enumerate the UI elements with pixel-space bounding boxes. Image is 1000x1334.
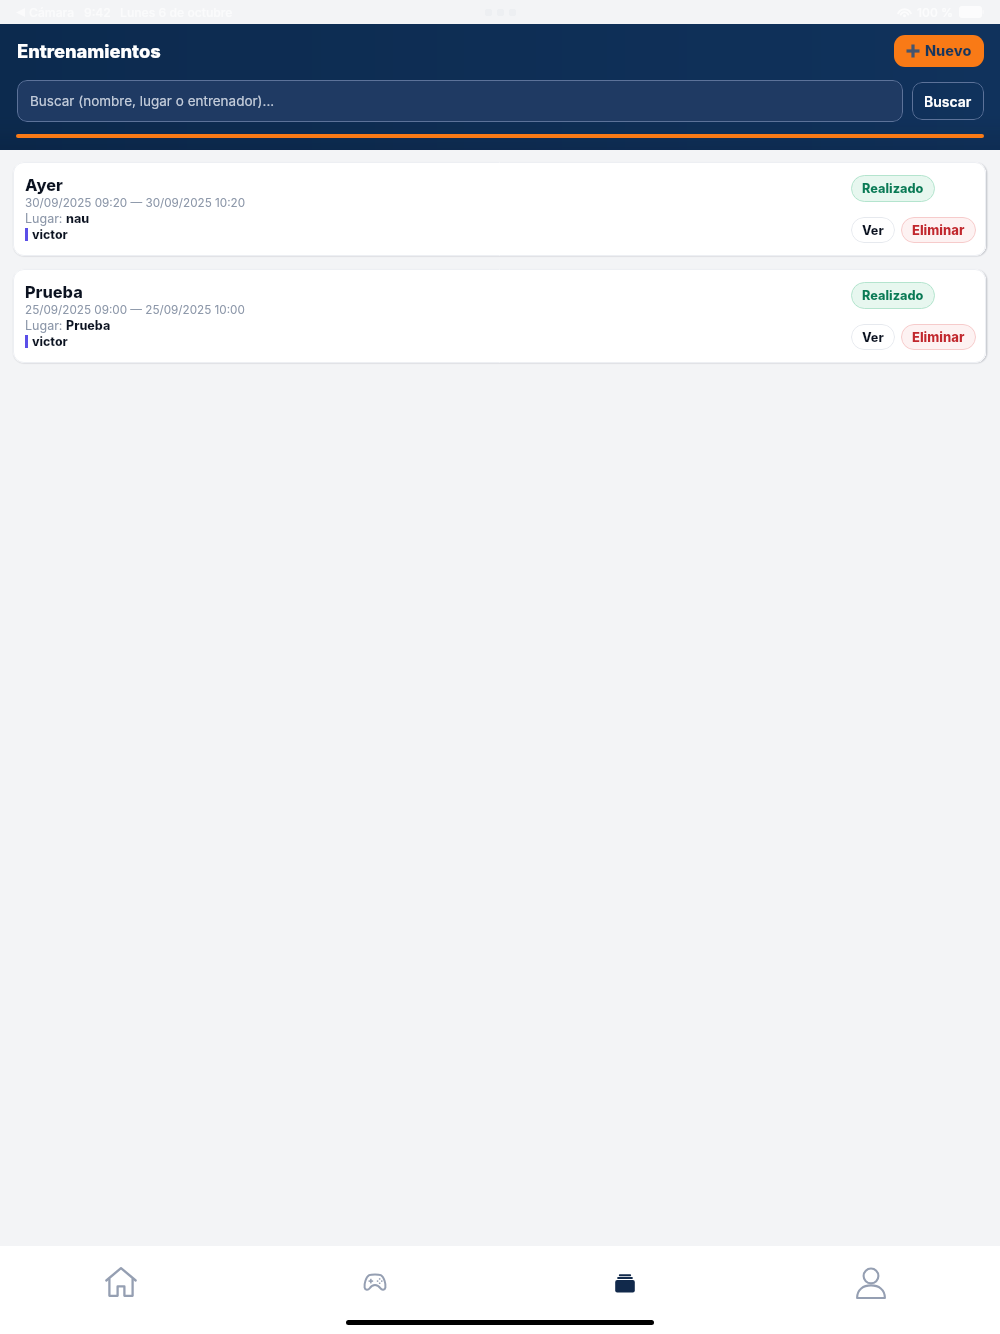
button[interactable]: Juegos — [250, 1246, 500, 1318]
staticText: victor — [32, 334, 68, 349]
staticText: Prueba — [66, 318, 111, 333]
staticText: victor — [32, 227, 68, 242]
staticText: Lugar: — [25, 211, 66, 226]
staticText: 100 % — [917, 5, 954, 20]
staticText: nau — [66, 211, 90, 226]
button[interactable]: Buscar — [912, 82, 984, 120]
staticText: Eliminar — [912, 329, 965, 345]
staticText: 25/09/2025 09:00 — 25/09/2025 10:00 — [25, 303, 245, 317]
staticText: Prueba — [25, 282, 83, 302]
button[interactable]: Perfil — [750, 1246, 1000, 1318]
button[interactable]: Ver — [851, 324, 895, 350]
button[interactable]: Nuevo — [894, 35, 984, 67]
button[interactable]: Entrenamientos — [500, 1246, 750, 1318]
button[interactable]: Prueba — [13, 269, 986, 363]
staticText: Ver — [862, 223, 884, 238]
staticText: Eliminar — [912, 222, 965, 238]
button[interactable]: Ayer — [13, 162, 986, 256]
staticText: Lugar: — [25, 318, 66, 333]
staticText: Nuevo — [925, 42, 972, 60]
button[interactable]: Buscar (nombre, lugar o entrenador)... — [17, 80, 903, 122]
button[interactable]: Ver — [851, 217, 895, 243]
button[interactable]: Eliminar — [901, 217, 976, 243]
staticText: Entrenamientos — [17, 40, 161, 62]
staticText: Ayer — [25, 175, 63, 195]
staticText: Ver — [862, 330, 884, 345]
button[interactable]: Inicio — [0, 1246, 250, 1318]
staticText: 30/09/2025 09:20 — 30/09/2025 10:20 — [25, 196, 246, 210]
staticText: Buscar (nombre, lugar o entrenador)... — [30, 93, 275, 109]
staticText: Buscar — [924, 93, 972, 110]
button[interactable]: Eliminar — [901, 324, 976, 350]
staticText: Realizado — [862, 181, 924, 196]
staticText: Realizado — [862, 288, 924, 303]
